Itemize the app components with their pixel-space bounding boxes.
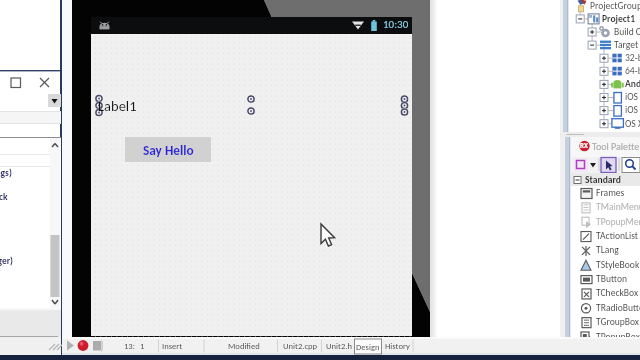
button[interactable]: Unit2.h [323, 338, 354, 354]
button[interactable]: History [383, 338, 412, 354]
staticText: ProjectGroup1 [590, 0, 640, 12]
staticText: Target P [614, 39, 640, 51]
staticText: TStyleBook [596, 259, 640, 271]
button[interactable]: ProjectGroup1 [590, 0, 640, 12]
staticText: Design [356, 342, 380, 352]
button[interactable]: TButton [596, 273, 628, 285]
button[interactable]: TLang [596, 244, 619, 256]
staticText: 13: [124, 341, 136, 351]
staticText: TActionList [596, 230, 639, 242]
staticText: Build Co [614, 26, 640, 38]
button[interactable]: TCheckBox [596, 287, 639, 299]
staticText: Unit2.cpp [283, 341, 318, 351]
staticText: 64-b [625, 65, 640, 77]
staticText: Label1 [98, 97, 137, 115]
staticText: TRadioButto [596, 302, 640, 314]
button[interactable]: Frames [596, 187, 625, 199]
button[interactable]: 64-b [625, 65, 640, 77]
staticText: Unit2.h [326, 341, 352, 351]
staticText: History [385, 341, 410, 351]
button[interactable]: TRadioButto [596, 302, 640, 314]
staticText: Frames [596, 187, 625, 199]
staticText: TButton [596, 273, 628, 285]
staticText: Project1 [602, 13, 636, 25]
staticText: iOS [625, 91, 638, 103]
staticText: Standard [585, 174, 621, 186]
button[interactable]: Unit2.cpp [279, 338, 321, 354]
staticText: TCheckBox [596, 287, 639, 299]
staticText: And [625, 78, 640, 90]
button[interactable]: Design [355, 339, 381, 354]
staticText: Modified [228, 341, 260, 351]
staticText: OS X [625, 118, 640, 130]
button[interactable]: TPopupMen [596, 216, 640, 228]
staticText: ck [0, 191, 8, 203]
button[interactable]: Target P [614, 39, 640, 51]
button[interactable]: Project1 [602, 13, 636, 25]
staticText: TMainMenu [596, 201, 640, 213]
button[interactable]: OS X [625, 118, 640, 130]
button[interactable]: iOS [625, 91, 638, 103]
staticText: 1 [140, 341, 145, 351]
staticText: 32-b [625, 52, 640, 64]
button[interactable]: TActionList [596, 230, 639, 242]
button[interactable]: TMainMenu [596, 201, 640, 213]
button[interactable]: 32-b [625, 52, 640, 64]
staticText: anager) [0, 255, 13, 267]
staticText: iOS [625, 104, 638, 116]
button[interactable]: TStyleBook [596, 259, 640, 271]
staticText: RX [580, 141, 588, 150]
staticText: TGroupBox [596, 316, 640, 328]
staticText: 10:30 [383, 18, 409, 31]
staticText: TPopupBox [596, 331, 640, 343]
button[interactable]: TPopupBox [596, 331, 640, 343]
staticText: Say Hello [143, 142, 194, 158]
staticText: TLang [596, 244, 619, 256]
button[interactable]: TGroupBox [596, 316, 640, 328]
button[interactable]: iOS [625, 104, 638, 116]
staticText: TPopupMen [596, 216, 640, 228]
staticText: Tool Palette [592, 140, 640, 152]
button[interactable]: And [625, 78, 640, 90]
button[interactable]: Build Co [614, 26, 640, 38]
staticText: ttings) [0, 167, 12, 179]
button[interactable]: Say Hello [125, 137, 211, 162]
staticText: Insert [162, 341, 183, 351]
